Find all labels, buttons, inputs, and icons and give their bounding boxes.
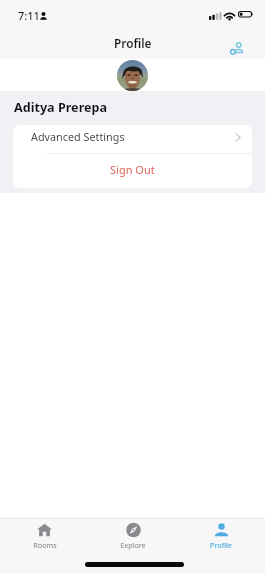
button[interactable]: Profile bbox=[177, 519, 265, 550]
staticText: Advanced Settings bbox=[31, 129, 125, 144]
button[interactable]: Advanced Settings bbox=[13, 125, 252, 153]
staticText: Aditya Prerepa bbox=[14, 99, 108, 116]
button[interactable]: Explore bbox=[89, 519, 177, 550]
staticText: Rooms bbox=[33, 540, 57, 550]
button[interactable]: Add friend bbox=[226, 37, 248, 59]
staticText: 7:11 bbox=[18, 8, 40, 23]
staticText: Explore bbox=[120, 540, 146, 550]
button[interactable]: Sign Out bbox=[13, 154, 252, 188]
staticText: Profile bbox=[210, 540, 232, 550]
staticText: Sign Out bbox=[110, 162, 155, 177]
staticText: Profile bbox=[114, 35, 152, 51]
button[interactable]: Rooms bbox=[0, 519, 89, 550]
